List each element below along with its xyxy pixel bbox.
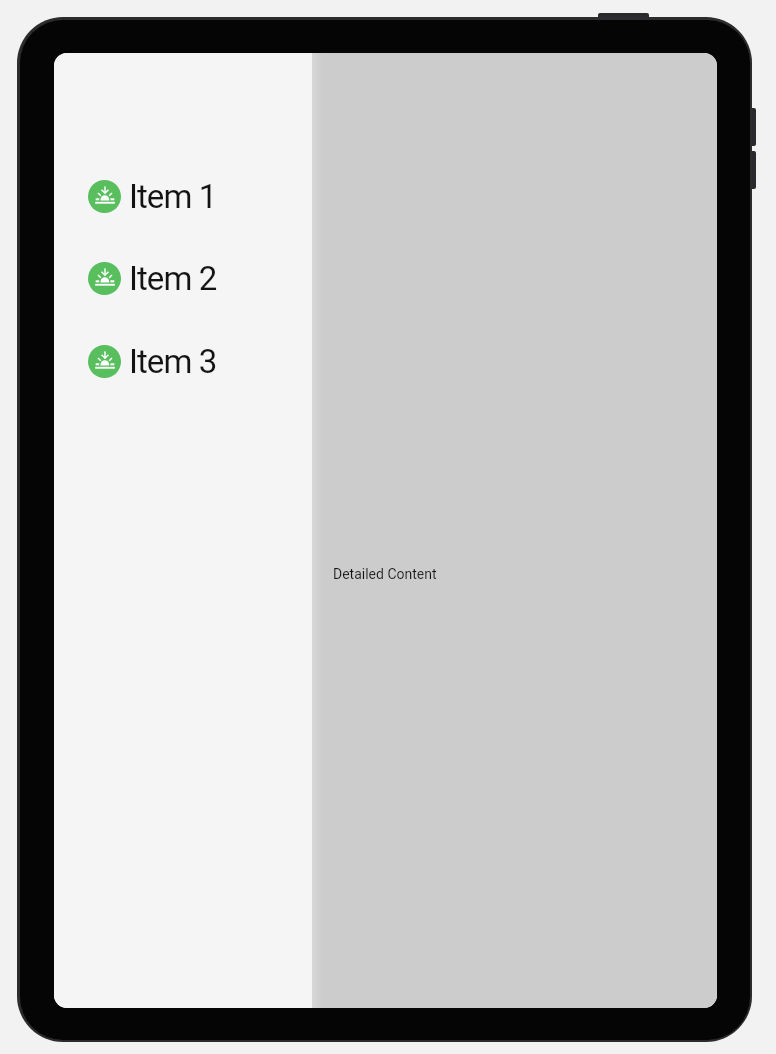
staticText: Item 2	[129, 259, 217, 298]
staticText: Detailed Content	[333, 566, 437, 582]
staticText: Item 1	[129, 177, 217, 216]
button[interactable]: Item 3	[54, 337, 312, 385]
button[interactable]: Item 2	[54, 254, 312, 302]
button[interactable]: Item 1	[54, 172, 312, 220]
staticText: Item 3	[129, 342, 217, 381]
